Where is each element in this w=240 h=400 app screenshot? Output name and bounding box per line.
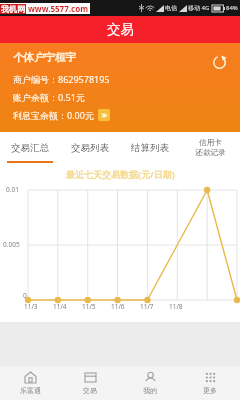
staticText: 11/5 bbox=[82, 302, 96, 311]
button[interactable]: 查看利息宝 bbox=[98, 109, 110, 121]
staticText: 84% bbox=[226, 4, 238, 12]
staticText: 电信 bbox=[165, 4, 177, 12]
button[interactable]: 交易 bbox=[60, 366, 120, 400]
staticText: 11/6 bbox=[111, 302, 125, 311]
staticText: 商户编号：8629578195 bbox=[13, 73, 110, 85]
staticText: 个体户宁桓宇 bbox=[13, 51, 76, 64]
staticText: 账户余额：0.51元 bbox=[13, 91, 85, 103]
staticText: 最近七天交易数据(元/日期) bbox=[66, 168, 175, 180]
button[interactable]: 交易汇总 bbox=[0, 132, 60, 163]
staticText: 交易 bbox=[83, 386, 97, 395]
staticText: 我的 bbox=[143, 386, 157, 395]
staticText: 11/4 bbox=[53, 302, 67, 311]
staticText: 11/8 bbox=[169, 302, 183, 311]
staticText: 交易 bbox=[107, 21, 134, 38]
button[interactable]: 交易列表 bbox=[60, 132, 120, 163]
button[interactable]: 乐富通 bbox=[0, 366, 60, 400]
button[interactable]: 刷新 bbox=[209, 52, 229, 72]
staticText: 利息宝余额：0.00元 bbox=[13, 109, 94, 121]
button[interactable]: 更多 bbox=[180, 366, 240, 400]
staticText: 信用卡 还款记录 bbox=[195, 138, 226, 157]
staticText: 移动 4G bbox=[188, 4, 210, 12]
staticText: 11/7 bbox=[140, 302, 154, 311]
staticText: 结算列表 bbox=[131, 142, 169, 154]
staticText: 我机网 bbox=[1, 4, 25, 14]
staticText: 交易列表 bbox=[71, 142, 109, 154]
button[interactable]: 结算列表 bbox=[120, 132, 180, 163]
staticText: 11/3 bbox=[24, 302, 38, 311]
staticText: 更多 bbox=[203, 386, 217, 395]
staticText: 0.005 bbox=[3, 240, 20, 249]
staticText: 乐富通 bbox=[20, 386, 41, 395]
button[interactable]: 信用卡 还款记录 bbox=[180, 132, 240, 163]
staticText: 0.01 bbox=[6, 185, 19, 194]
staticText: www.5577.com bbox=[28, 3, 88, 14]
staticText: 0 bbox=[23, 291, 27, 300]
button[interactable]: 我的 bbox=[120, 366, 180, 400]
staticText: 交易汇总 bbox=[11, 142, 49, 154]
